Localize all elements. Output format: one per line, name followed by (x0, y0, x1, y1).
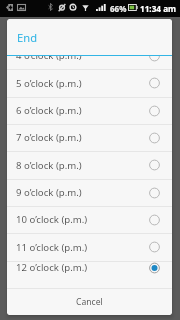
staticText: 12 o’clock (p.m.) (16, 261, 88, 274)
button[interactable]: 6 o’clock (p.m.) (7, 97, 172, 124)
staticText: 11 o’clock (p.m.) (16, 241, 88, 254)
staticText: 9 o’clock (p.m.) (16, 186, 82, 199)
staticText: 66% (110, 3, 127, 14)
button[interactable]: 10 o’clock (p.m.) (7, 206, 172, 233)
other: Screenshot (17, 4, 26, 11)
staticText: Cancel (76, 296, 103, 308)
button[interactable]: 8 o’clock (p.m.) (7, 151, 172, 179)
staticText: 5 o’clock (p.m.) (16, 77, 82, 90)
button[interactable]: 12 o’clock (p.m.) (7, 261, 172, 274)
staticText: 7 o’clock (p.m.) (16, 131, 82, 144)
button[interactable]: 9 o’clock (p.m.) (7, 179, 172, 206)
staticText: 4 o’clock (p.m.) (16, 56, 82, 62)
other: Download (6, 4, 13, 11)
staticText: 6 o’clock (p.m.) (16, 104, 82, 117)
button[interactable]: 5 o’clock (p.m.) (7, 69, 172, 97)
button[interactable]: 7 o’clock (p.m.) (7, 124, 172, 151)
staticText: 8 o’clock (p.m.) (16, 159, 82, 172)
button[interactable]: 4 o’clock (p.m.) (7, 56, 172, 69)
staticText: 10 o’clock (p.m.) (16, 213, 88, 226)
staticText: End (17, 30, 38, 45)
staticText: 11:34 am (140, 3, 177, 14)
button[interactable]: Cancel (7, 289, 172, 315)
button[interactable]: 11 o’clock (p.m.) (7, 233, 172, 261)
